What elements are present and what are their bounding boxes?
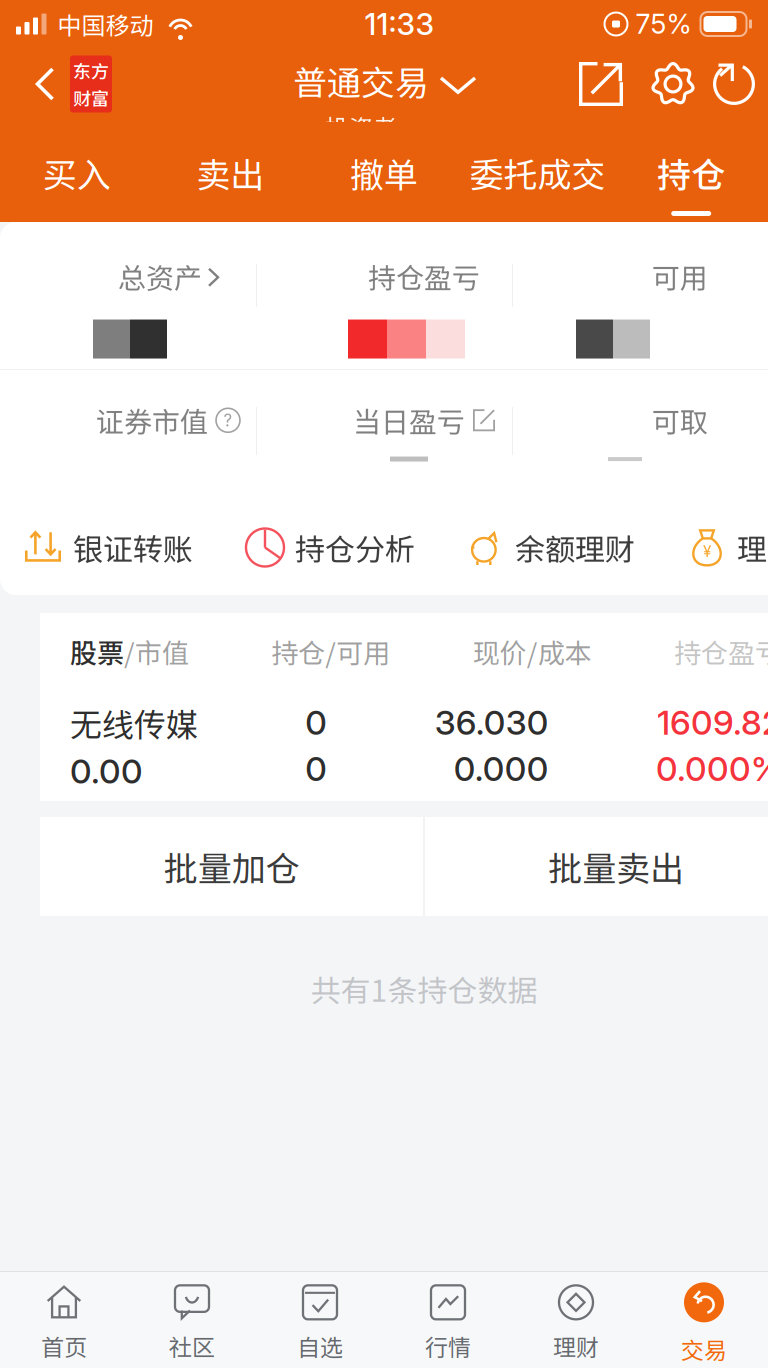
- staticText: 股票: [70, 632, 124, 671]
- staticText: 投资者: [325, 109, 397, 144]
- staticText: 持仓分析: [295, 526, 415, 569]
- button[interactable]: 理财: [512, 1272, 640, 1368]
- button[interactable]: 行情: [384, 1272, 512, 1368]
- staticText: 11:33: [364, 6, 434, 42]
- staticText: 交易: [681, 1332, 727, 1366]
- staticText: /市值: [124, 632, 189, 671]
- staticText: 无线传媒: [70, 699, 198, 746]
- button[interactable]: 普通交易: [293, 56, 475, 121]
- staticText: 普通交易: [293, 56, 429, 105]
- staticText: 批量卖出: [548, 842, 684, 891]
- staticText: 批量加仓: [164, 842, 300, 891]
- button[interactable]: ¥: [688, 526, 768, 569]
- button[interactable]: 社区: [128, 1272, 256, 1368]
- button[interactable]: 持仓分析: [246, 526, 415, 569]
- staticText: 首页: [41, 1329, 87, 1363]
- staticText: 现价/成本: [473, 632, 592, 671]
- staticText: 理财: [737, 526, 768, 569]
- staticText: 持仓: [657, 148, 725, 197]
- button[interactable]: 证券市值: [40, 400, 296, 440]
- staticText: 理财: [553, 1329, 599, 1363]
- button[interactable]: Settings: [638, 48, 708, 120]
- staticText: ?: [223, 410, 232, 430]
- button[interactable]: 委托成交: [461, 132, 614, 222]
- button[interactable]: Back: [20, 48, 70, 120]
- button[interactable]: 卖出: [154, 132, 307, 222]
- button[interactable]: 首页: [0, 1272, 128, 1368]
- staticText: 36.030: [435, 702, 549, 743]
- staticText: 75%: [635, 8, 691, 40]
- staticText: 财富: [73, 84, 109, 111]
- staticText: 社区: [169, 1329, 215, 1363]
- button[interactable]: 总资产: [40, 256, 296, 296]
- staticText: 0.00: [70, 751, 143, 792]
- button[interactable]: 持仓: [614, 132, 768, 222]
- button[interactable]: Refresh: [708, 48, 760, 120]
- staticText: 持仓盈亏: [368, 256, 480, 296]
- button[interactable]: 余额理财: [466, 526, 635, 569]
- staticText: 0: [305, 702, 327, 743]
- button[interactable]: 交易: [640, 1272, 768, 1368]
- staticText: 0.000%: [656, 748, 768, 789]
- staticText: 撤单: [350, 148, 418, 197]
- staticText: 可用: [652, 256, 708, 296]
- button[interactable]: East Money: [70, 48, 112, 120]
- button[interactable]: 银证转账: [24, 526, 193, 569]
- staticText: 0.000: [454, 748, 549, 789]
- button[interactable]: 当日盈亏: [296, 400, 552, 440]
- staticText: 证券市值: [96, 400, 208, 440]
- staticText: 余额理财: [515, 526, 635, 569]
- staticText: 总资产: [118, 256, 202, 296]
- staticText: 银证转账: [73, 526, 193, 569]
- staticText: 卖出: [196, 148, 264, 197]
- staticText: 委托成交: [470, 148, 606, 197]
- staticText: 当日盈亏: [353, 400, 465, 440]
- staticText: ¥: [703, 542, 711, 561]
- button[interactable]: 无线传媒: [40, 690, 768, 801]
- button[interactable]: 批量加仓: [40, 817, 423, 916]
- staticText: 0: [305, 748, 327, 789]
- button[interactable]: 批量卖出: [424, 817, 768, 916]
- staticText: 可取: [652, 400, 708, 440]
- button[interactable]: Share: [564, 48, 638, 120]
- button[interactable]: 自选: [256, 1272, 384, 1368]
- staticText: 行情: [425, 1329, 471, 1363]
- staticText: 1609.82: [657, 702, 768, 743]
- button[interactable]: 买入: [0, 132, 154, 222]
- staticText: 持仓/可用: [271, 632, 390, 671]
- staticText: 自选: [297, 1329, 343, 1363]
- staticText: 东方: [73, 57, 109, 83]
- staticText: 共有1条持仓数据: [310, 967, 537, 1010]
- staticText: 持仓盈亏: [674, 632, 768, 671]
- staticText: 中国移动: [57, 7, 153, 41]
- button[interactable]: 撤单: [307, 132, 461, 222]
- staticText: 买入: [43, 148, 111, 197]
